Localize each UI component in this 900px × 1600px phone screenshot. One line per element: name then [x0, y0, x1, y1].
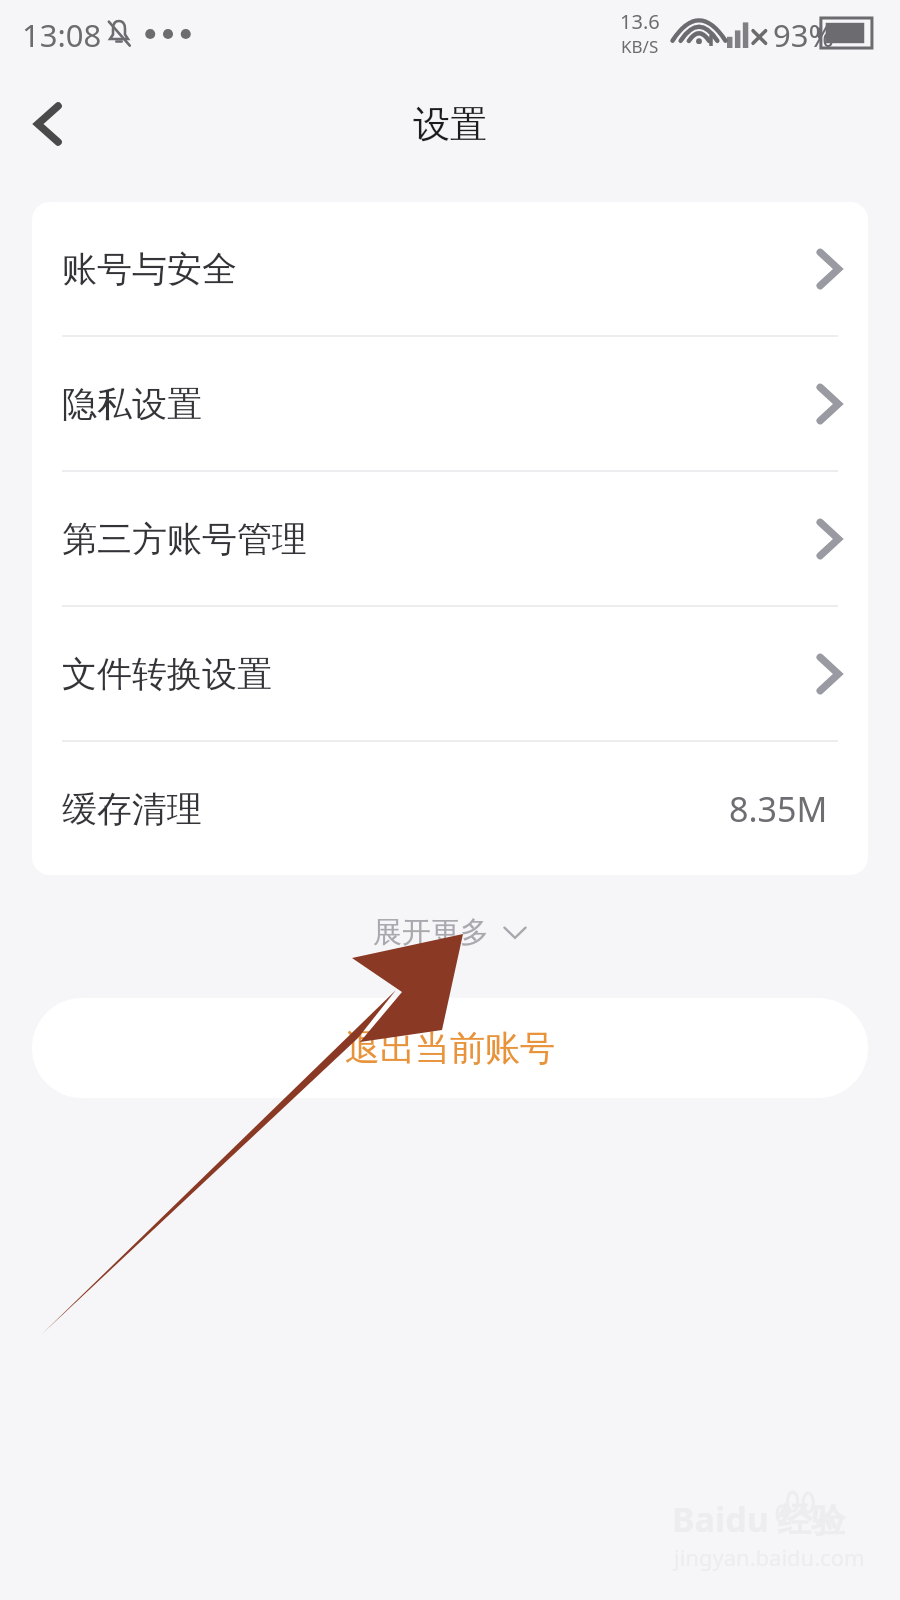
staticText: 13:08	[22, 14, 102, 56]
staticText: 第三方账号管理	[62, 517, 307, 561]
staticText: 账号与安全	[62, 247, 237, 291]
button[interactable]: 退出当前账号	[32, 998, 868, 1098]
button[interactable]: 隐私设置	[32, 337, 868, 470]
button[interactable]: 文件转换设置	[32, 607, 868, 740]
button[interactable]: 展开更多	[357, 904, 543, 961]
staticText: KB/S	[621, 35, 659, 58]
button[interactable]: 账号与安全	[32, 202, 868, 335]
staticText: 退出当前账号	[345, 1026, 555, 1070]
staticText: 缓存清理	[62, 787, 202, 831]
staticText: jingyan.baidu.com	[674, 1542, 865, 1572]
staticText: 文件转换设置	[62, 652, 272, 696]
button[interactable]: 第三方账号管理	[32, 472, 868, 605]
staticText: 展开更多	[373, 914, 489, 951]
staticText: 93%	[773, 14, 835, 56]
staticText: 13.6	[620, 8, 660, 35]
staticText: 隐私设置	[62, 382, 202, 426]
button[interactable]: Back	[6, 82, 90, 166]
staticText: 8.35M	[729, 786, 828, 832]
staticText: Baidu 经验	[672, 1496, 846, 1542]
staticText: 设置	[0, 101, 900, 148]
button[interactable]: 缓存清理	[32, 742, 868, 875]
